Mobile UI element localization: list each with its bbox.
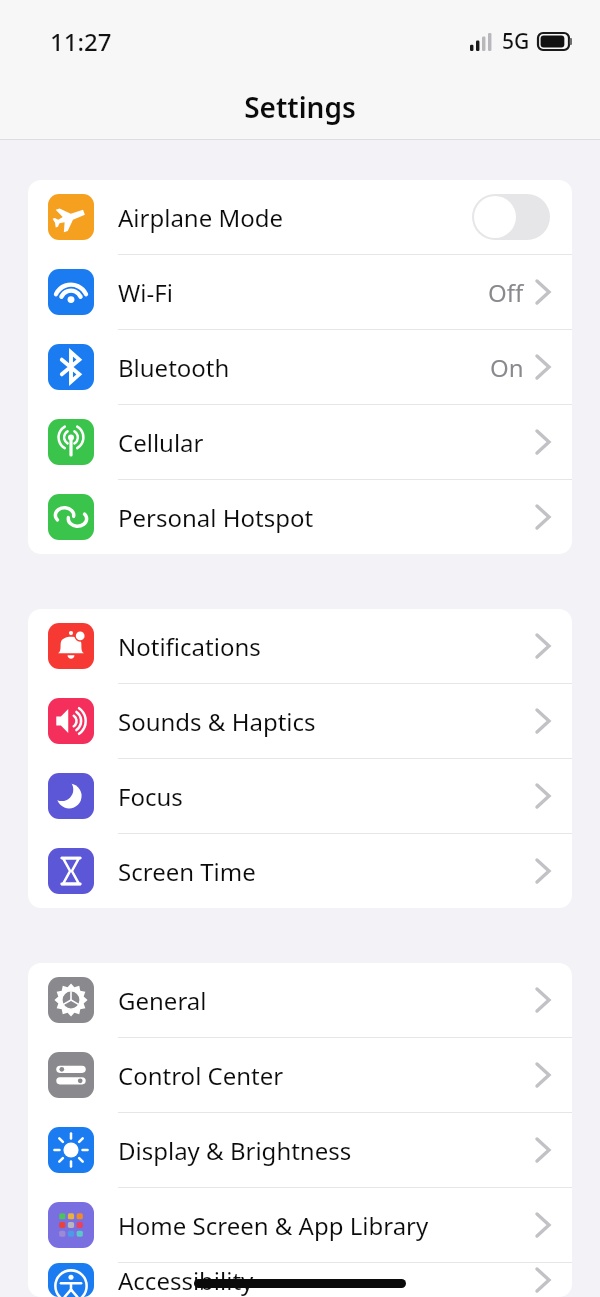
button[interactable]: Sounds & Haptics <box>28 684 572 759</box>
button[interactable]: Cellular <box>28 405 572 480</box>
staticText: Cellular <box>118 426 536 459</box>
staticText: Home Screen & App Library <box>118 1209 536 1242</box>
button[interactable]: General <box>28 963 572 1038</box>
button[interactable]: Control Center <box>28 1038 572 1113</box>
button[interactable]: Accessibility <box>28 1263 572 1297</box>
staticText: Settings <box>244 88 356 126</box>
staticText: Notifications <box>118 630 536 663</box>
button[interactable]: Display & Brightness <box>28 1113 572 1188</box>
button[interactable]: Home Screen & App Library <box>28 1188 572 1263</box>
button[interactable]: Airplane Mode toggle <box>472 194 550 240</box>
staticText: Screen Time <box>118 855 536 888</box>
staticText: 5G <box>502 27 530 56</box>
button[interactable]: Focus <box>28 759 572 834</box>
button[interactable]: Wi-Fi <box>28 255 572 330</box>
button[interactable]: Personal Hotspot <box>28 480 572 554</box>
staticText: Bluetooth <box>118 351 490 384</box>
button[interactable]: Screen Time <box>28 834 572 908</box>
button[interactable]: Notifications <box>28 609 572 684</box>
staticText: Airplane Mode <box>118 201 472 234</box>
button[interactable]: Airplane Mode <box>28 180 572 255</box>
staticText: Accessibility <box>118 1264 536 1297</box>
staticText: 11:27 <box>50 25 112 58</box>
staticText: Off <box>488 276 524 309</box>
staticText: Wi-Fi <box>118 276 488 309</box>
staticText: Personal Hotspot <box>118 501 536 534</box>
staticText: Sounds & Haptics <box>118 705 536 738</box>
staticText: On <box>490 351 524 384</box>
staticText: Control Center <box>118 1059 536 1092</box>
staticText: Focus <box>118 780 536 813</box>
staticText: Display & Brightness <box>118 1134 536 1167</box>
staticText: General <box>118 984 536 1017</box>
button[interactable]: Bluetooth <box>28 330 572 405</box>
